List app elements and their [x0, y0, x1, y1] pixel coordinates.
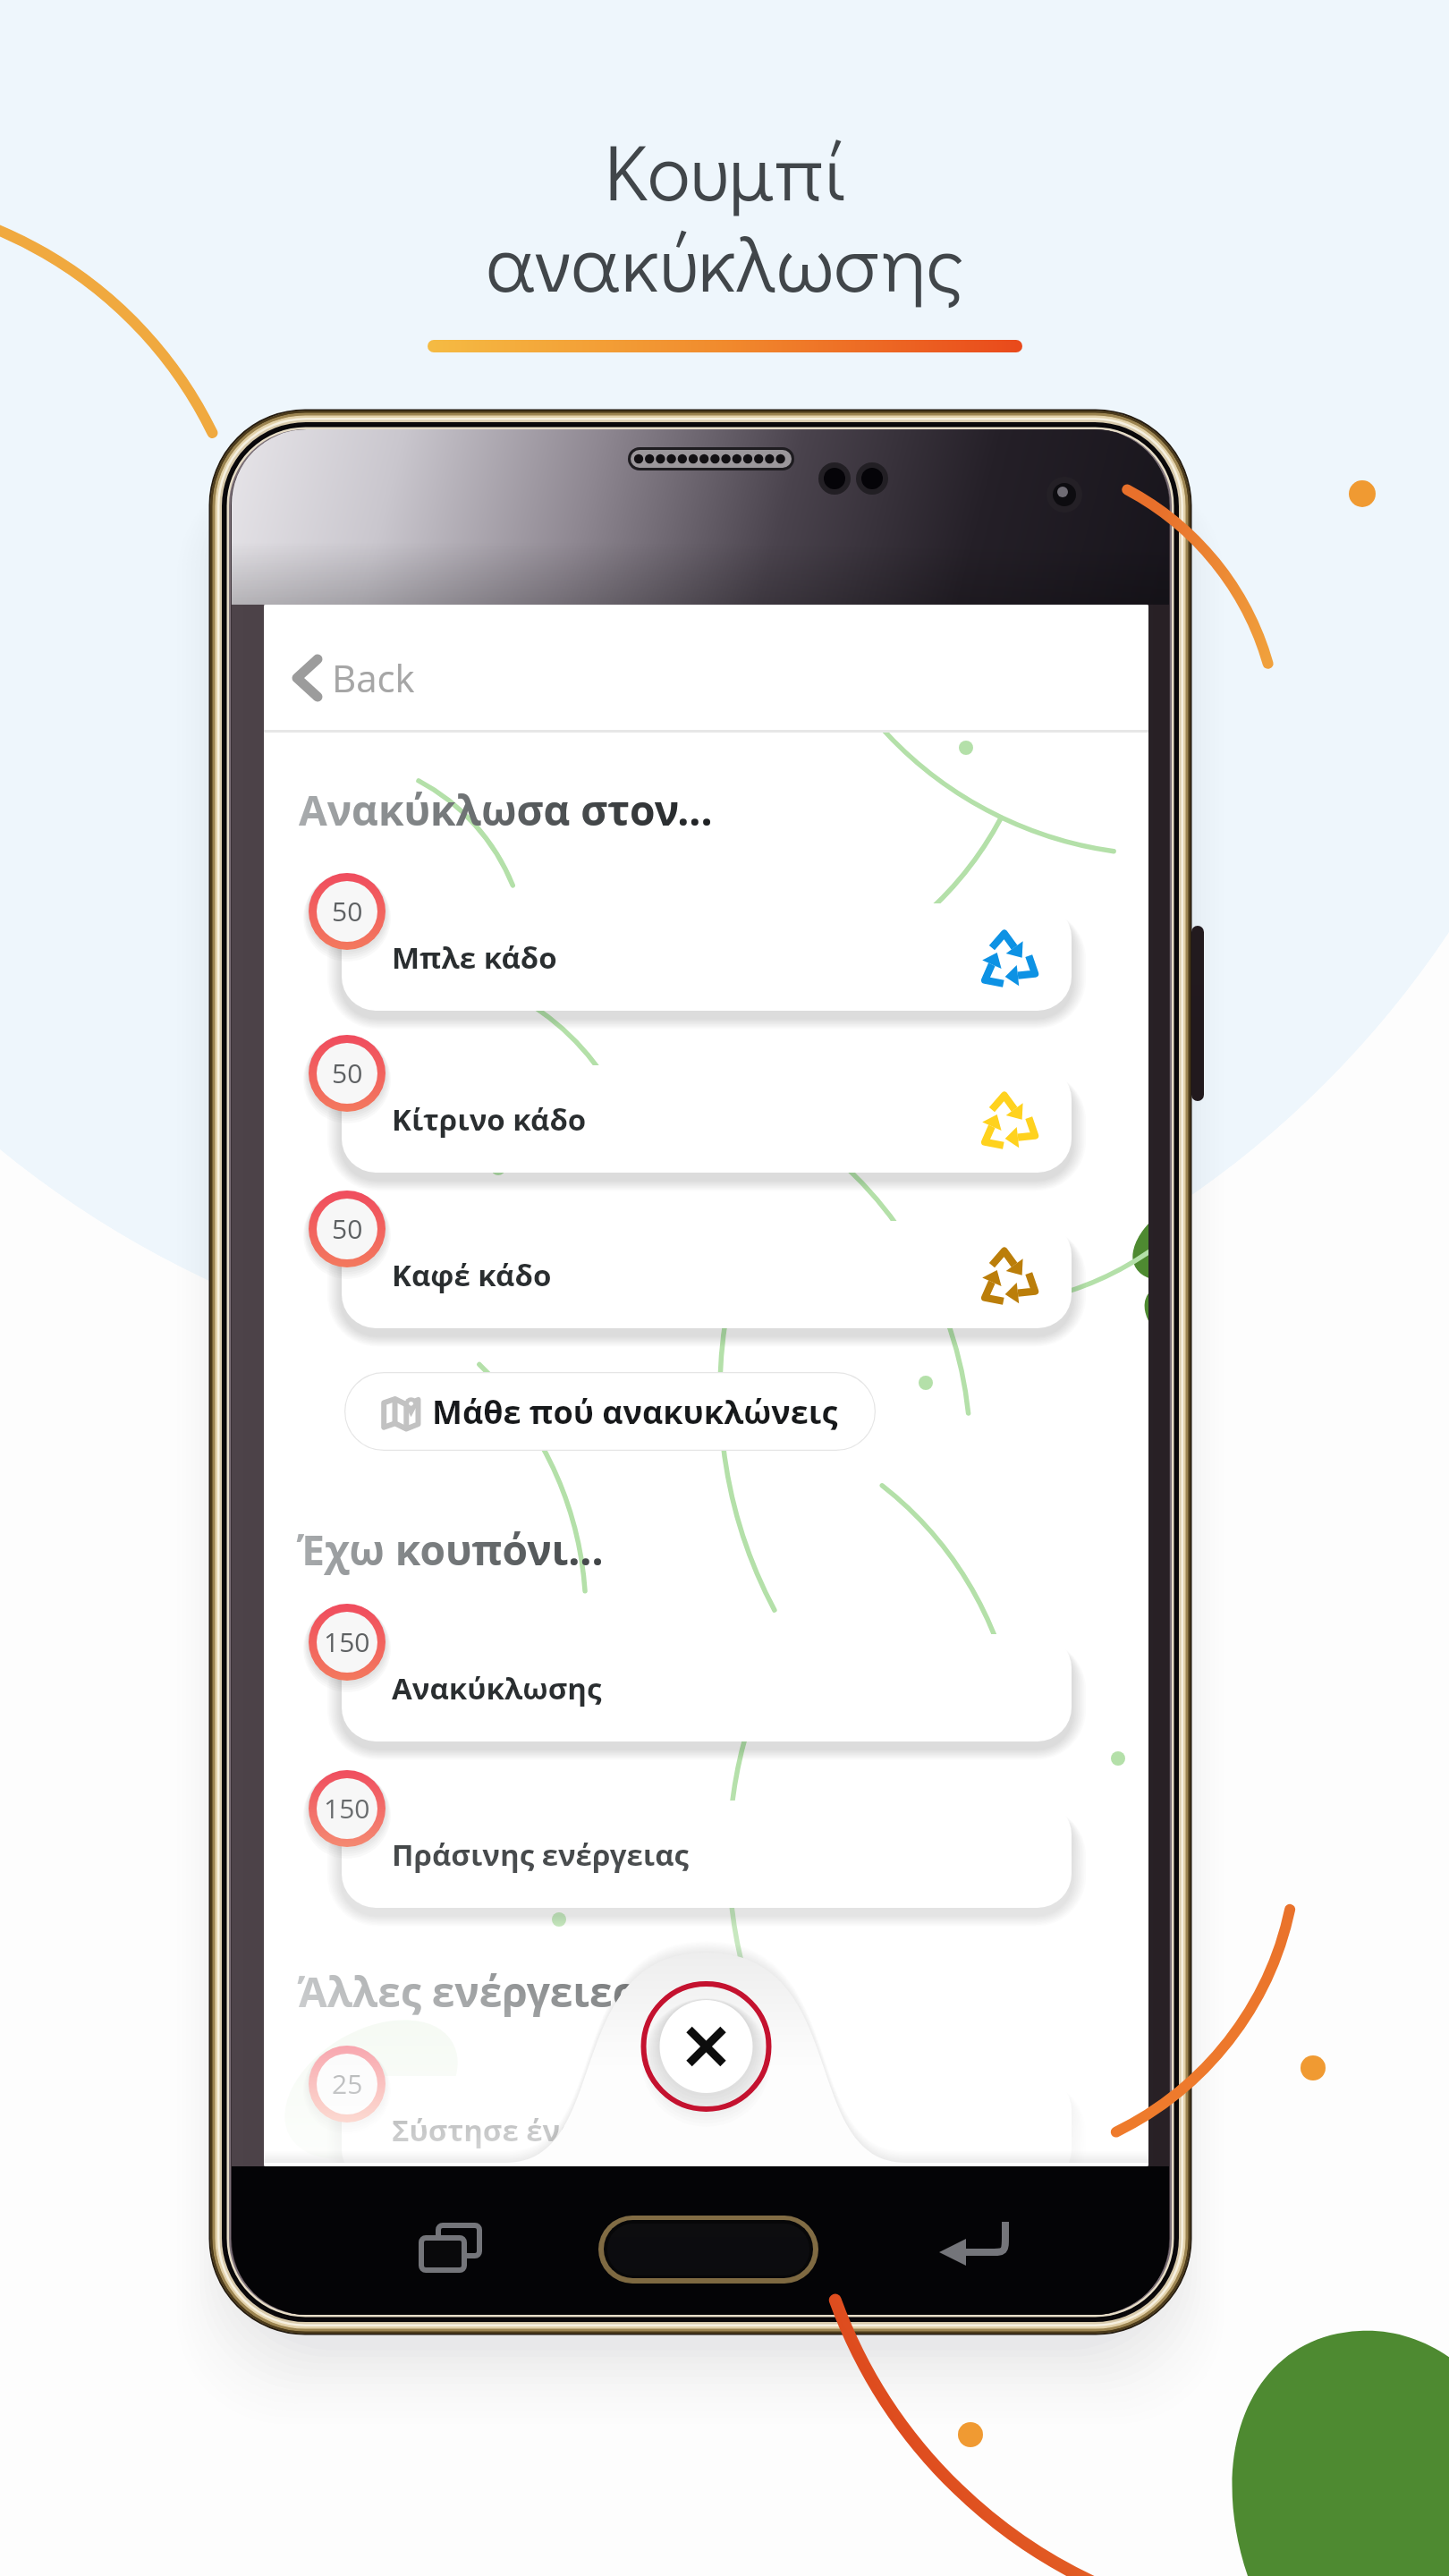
staticText: Πράσινης ενέργειας [392, 1835, 689, 1875]
staticText: Κίτρινο κάδο [392, 1099, 587, 1140]
button[interactable]: Ανακύκλωσης [342, 1634, 1072, 1741]
staticText: 50 [332, 893, 363, 929]
staticText: Ανακύκλωσα στον... [299, 782, 713, 838]
staticText: Back [332, 652, 415, 703]
button[interactable]: Κλείσιμο [641, 1981, 772, 2112]
staticText: 50 [332, 1055, 363, 1091]
staticText: Ανακύκλωσης [392, 1668, 602, 1708]
staticText: Σύστησε ένα φίλο [392, 2110, 659, 2150]
staticText: 50 [332, 1210, 363, 1247]
staticText: Μάθε πού ανακυκλώνεις [432, 1390, 838, 1434]
button[interactable]: Back [280, 641, 428, 714]
staticText: Μπλε κάδο [392, 937, 557, 978]
button[interactable]: Σύστησε ένα φίλο [342, 2076, 1072, 2166]
staticText: 150 [324, 1790, 370, 1826]
staticText: 150 [324, 1623, 370, 1660]
button[interactable]: Πράσινης ενέργειας [342, 1801, 1072, 1908]
staticText: Έχω κουπόνι... [299, 1521, 604, 1578]
button[interactable]: Κίτρινο κάδο [342, 1065, 1072, 1173]
staticText: Καφέ κάδο [392, 1255, 552, 1295]
button[interactable]: Μάθε πού ανακυκλώνεις [344, 1372, 876, 1451]
staticText: Κουμπί ανακύκλωσης [486, 117, 964, 313]
button[interactable]: Μπλε κάδο [342, 903, 1072, 1011]
staticText: Άλλες ενέργειες [299, 1963, 633, 2020]
button[interactable]: Καφέ κάδο [342, 1221, 1072, 1328]
staticText: 25 [332, 2065, 363, 2102]
